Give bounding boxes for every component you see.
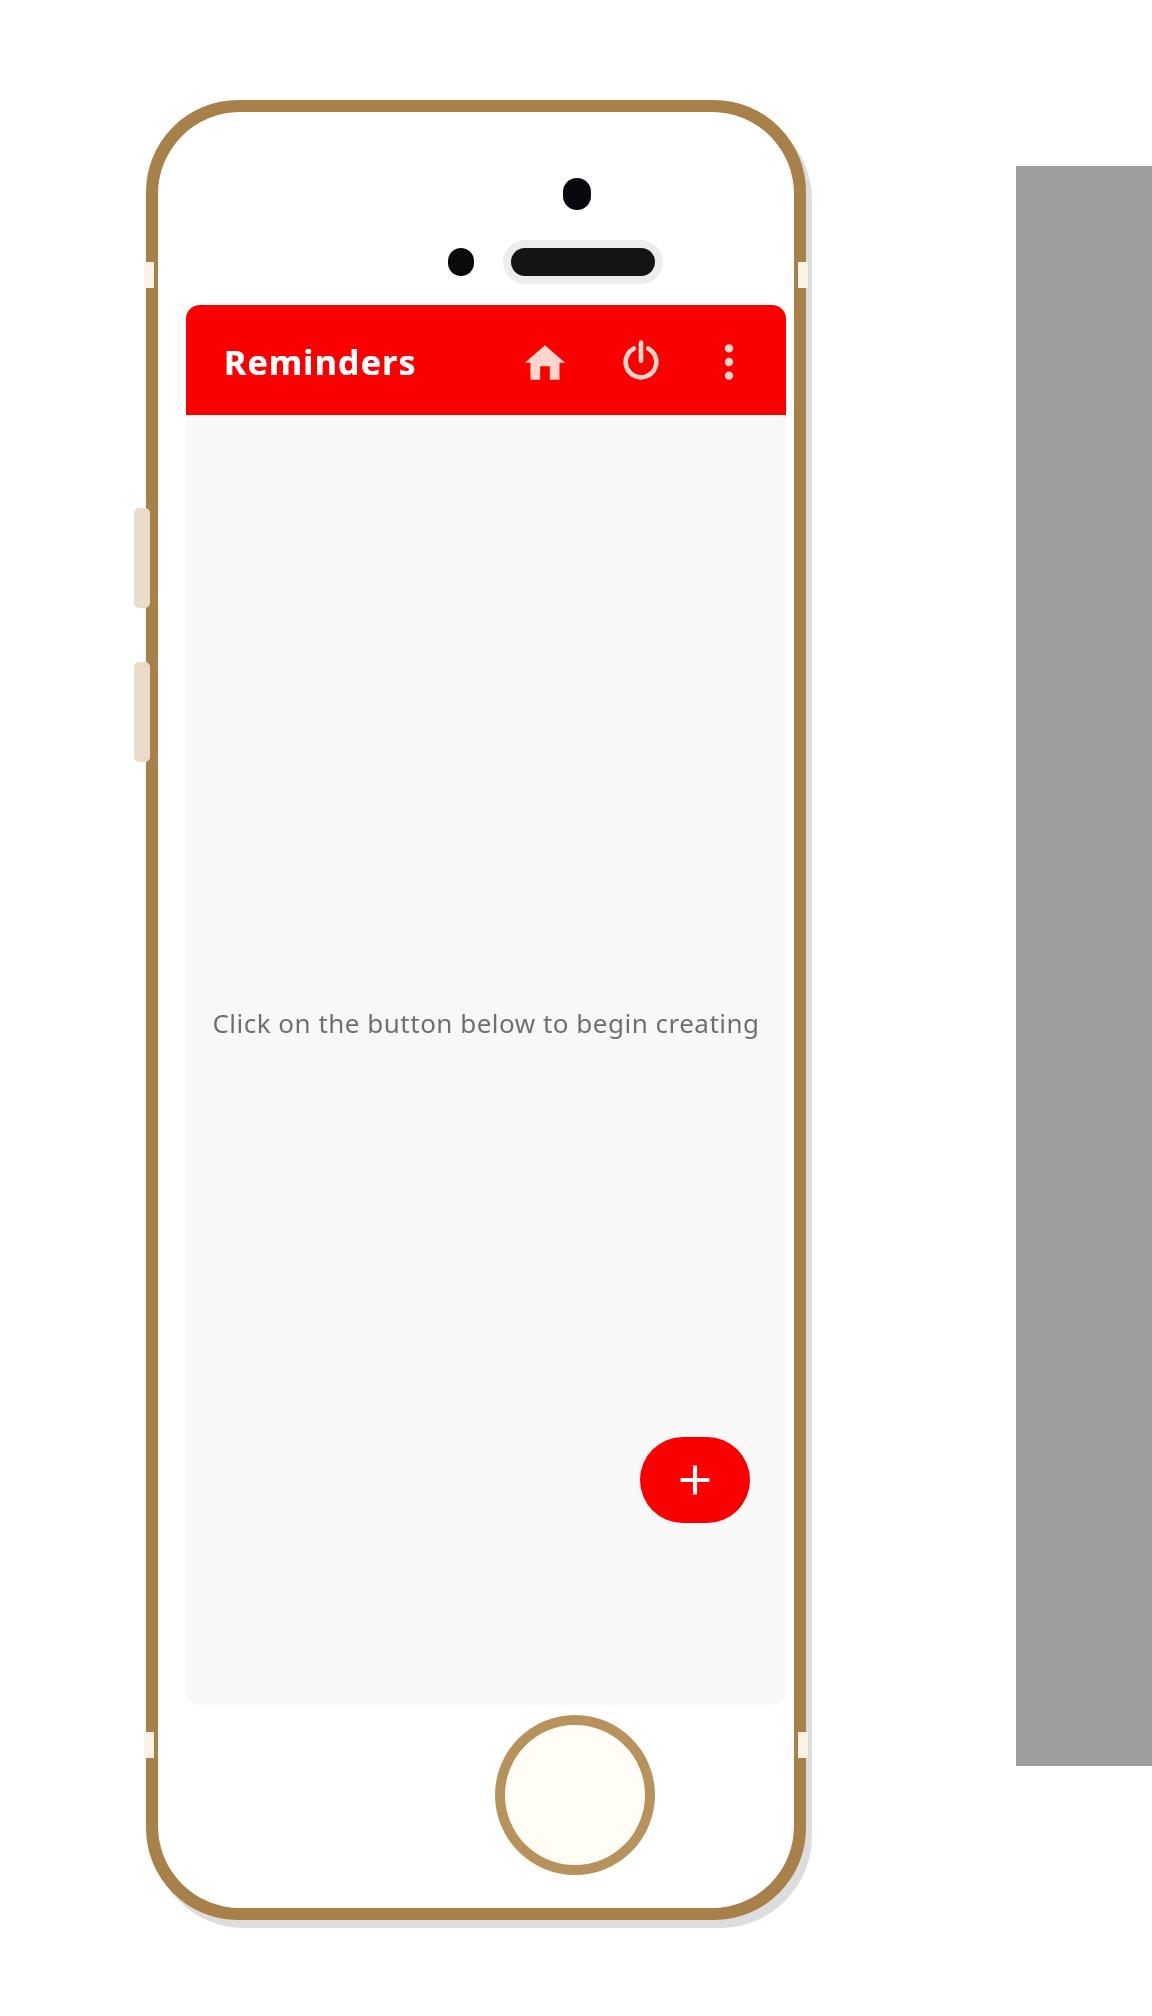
button[interactable]: More options <box>692 325 766 399</box>
button[interactable]: Home button <box>495 1715 655 1875</box>
button[interactable]: Add reminder <box>640 1437 750 1523</box>
button[interactable]: Home <box>508 325 582 399</box>
button[interactable]: Power <box>604 325 678 399</box>
staticText: Reminders <box>224 339 417 385</box>
staticText: Click on the button below to begin creat… <box>186 1005 786 1040</box>
